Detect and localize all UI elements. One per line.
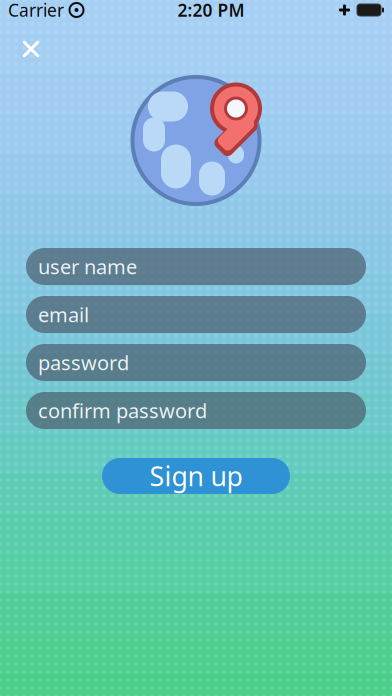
- button[interactable]: password: [26, 344, 366, 381]
- staticText: Carrier: [8, 0, 64, 21]
- staticText: password: [38, 349, 129, 376]
- button[interactable]: confirm password: [26, 392, 366, 429]
- button[interactable]: user name: [26, 248, 366, 285]
- staticText: 2:20 PM: [177, 0, 244, 21]
- staticText: email: [38, 301, 89, 328]
- button[interactable]: Sign up: [102, 458, 290, 494]
- staticText: Sign up: [149, 458, 242, 494]
- staticText: [64, 0, 69, 21]
- button[interactable]: email: [26, 296, 366, 333]
- staticText: user name: [38, 253, 137, 280]
- button[interactable]: Close: [9, 27, 53, 71]
- staticText: confirm password: [38, 397, 207, 424]
